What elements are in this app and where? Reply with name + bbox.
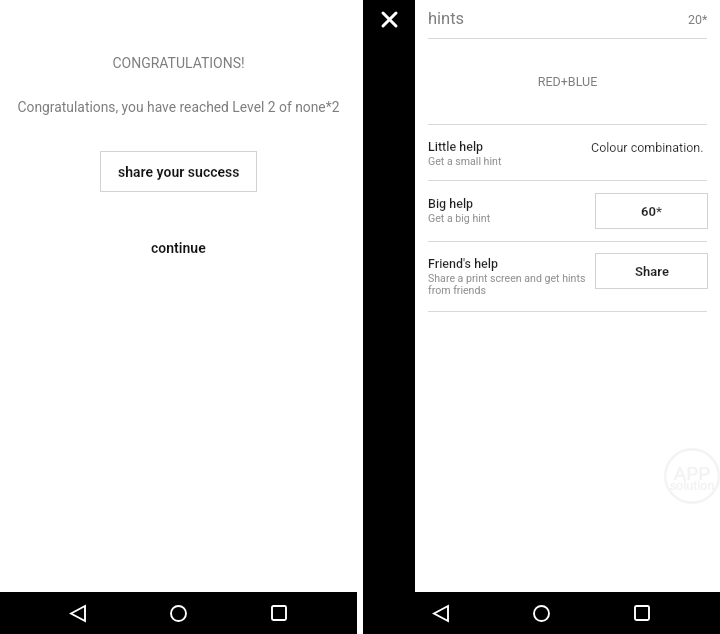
button[interactable]: Home [519, 592, 563, 634]
staticText: RED+BLUE [415, 74, 720, 89]
button[interactable]: Home [156, 592, 200, 634]
button[interactable]: Back [419, 592, 463, 634]
staticText: Get a small hint [428, 155, 502, 167]
staticText: Share a print screen and get hints from … [428, 272, 586, 296]
staticText: 20* [688, 12, 708, 27]
staticText: Big help [428, 196, 474, 211]
staticText: solution [664, 478, 720, 493]
button[interactable]: Friend's help [415, 239, 720, 311]
staticText: 60* [641, 204, 662, 219]
staticText: APP [664, 462, 720, 484]
button[interactable]: share your success [100, 151, 257, 192]
button[interactable]: Recent apps [620, 592, 664, 634]
staticText: continue [151, 240, 206, 256]
staticText: Friend's help [428, 256, 498, 271]
staticText: Colour combination. [591, 140, 704, 155]
staticText: Little help [428, 139, 484, 154]
staticText: share your success [118, 164, 240, 180]
button[interactable]: Recent apps [257, 592, 301, 634]
staticText: Share [635, 264, 669, 279]
button[interactable]: 60* [595, 193, 708, 229]
staticText: CONGRATULATIONS! [0, 55, 357, 71]
button[interactable]: Share [595, 253, 708, 289]
button[interactable]: Close [372, 2, 406, 36]
staticText: Get a big hint [428, 212, 491, 224]
button[interactable]: continue [139, 236, 218, 260]
staticText: Congratulations, you have reached Level … [0, 99, 357, 115]
button[interactable]: Big help [415, 179, 720, 240]
staticText: hints [428, 9, 465, 28]
button[interactable]: Little help [415, 122, 720, 180]
button[interactable]: Back [56, 592, 100, 634]
